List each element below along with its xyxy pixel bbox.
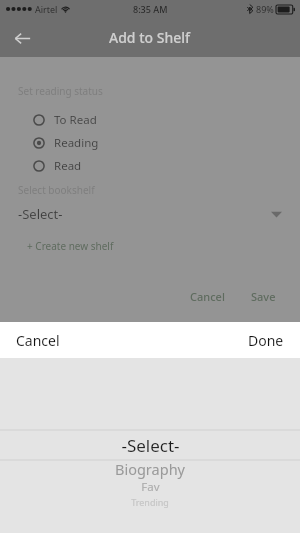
button[interactable]: Cancel bbox=[184, 285, 231, 308]
staticText: Fav bbox=[141, 479, 160, 495]
button[interactable]: Done bbox=[232, 322, 300, 358]
staticText: Cancel bbox=[190, 289, 225, 304]
button[interactable]: Biography bbox=[0, 459, 300, 479]
button[interactable]: To Read bbox=[0, 108, 300, 131]
staticText: Biography bbox=[115, 459, 185, 479]
staticText: + Create new shelf bbox=[27, 239, 114, 253]
staticText: Add to Shelf bbox=[109, 28, 191, 47]
staticText: Reading bbox=[54, 135, 99, 151]
button[interactable]: + Create new shelf bbox=[24, 237, 117, 255]
staticText: Select bookshelf bbox=[18, 183, 95, 197]
button[interactable]: Save bbox=[245, 285, 282, 308]
staticText: Read bbox=[54, 158, 82, 174]
staticText: 8:35 AM bbox=[133, 3, 168, 15]
staticText: Save bbox=[251, 289, 276, 304]
staticText: Trending bbox=[131, 496, 169, 508]
staticText: Set reading status bbox=[18, 84, 103, 98]
button[interactable]: Read bbox=[0, 154, 300, 177]
staticText: Done bbox=[248, 331, 284, 350]
button[interactable]: Trending bbox=[0, 495, 300, 508]
button[interactable]: -Select- bbox=[18, 197, 282, 231]
button[interactable]: Fav bbox=[0, 479, 300, 495]
staticText: Airtel bbox=[35, 3, 58, 15]
staticText: Cancel bbox=[16, 331, 60, 350]
staticText: -Select- bbox=[121, 434, 180, 457]
button[interactable]: Cancel bbox=[0, 322, 76, 358]
staticText: -Select- bbox=[18, 205, 63, 223]
staticText: To Read bbox=[54, 112, 97, 128]
button[interactable]: Reading bbox=[0, 131, 300, 154]
button[interactable]: -Select- bbox=[0, 433, 300, 457]
button[interactable]: Back bbox=[6, 22, 38, 54]
staticText: 89% bbox=[256, 3, 274, 15]
